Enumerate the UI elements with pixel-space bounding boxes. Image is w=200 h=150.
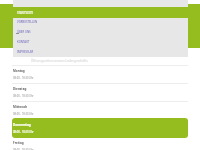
button[interactable]: Mittwoch bbox=[12, 101, 188, 116]
staticText: Donnerstag bbox=[13, 123, 31, 127]
button[interactable]: KONTAKT bbox=[13, 37, 188, 47]
staticText: Montag bbox=[13, 69, 25, 73]
button[interactable]: VORBESTELLEN bbox=[13, 17, 188, 27]
staticText: Mittwoch bbox=[13, 105, 28, 109]
button[interactable]: Freitag bbox=[12, 137, 188, 150]
staticText: 08:00 - 18:30 Uhr bbox=[13, 130, 34, 134]
button[interactable]: Donnerstag bbox=[12, 119, 188, 134]
staticText: KONTAKT bbox=[17, 40, 30, 44]
button[interactable]: Montag bbox=[12, 65, 188, 80]
staticText: 08:00 - 18:30 Uhr bbox=[13, 148, 34, 150]
button[interactable]: Dienstag bbox=[12, 83, 188, 98]
staticText: ÜBER UNS bbox=[17, 30, 31, 34]
button[interactable]: STARTSEITE bbox=[0, 7, 200, 18]
staticText: IMPRESSUM bbox=[17, 50, 34, 54]
staticText: Dienstag bbox=[13, 87, 27, 91]
staticText: Öffnungszeiten unseres Ladengeschäfts bbox=[31, 59, 88, 63]
staticText: Freitag bbox=[13, 141, 24, 145]
staticText: VORBESTELLEN bbox=[17, 20, 38, 24]
staticText: 08:00 - 18:30 Uhr bbox=[13, 76, 34, 80]
staticText: 08:00 - 18:30 Uhr bbox=[13, 94, 34, 98]
staticText: 08:00 - 18:30 Uhr bbox=[13, 112, 34, 116]
staticText: STARTSEITE bbox=[17, 11, 34, 15]
button[interactable]: IMPRESSUM bbox=[13, 47, 188, 57]
button[interactable]: ÜBER UNS bbox=[13, 27, 188, 37]
